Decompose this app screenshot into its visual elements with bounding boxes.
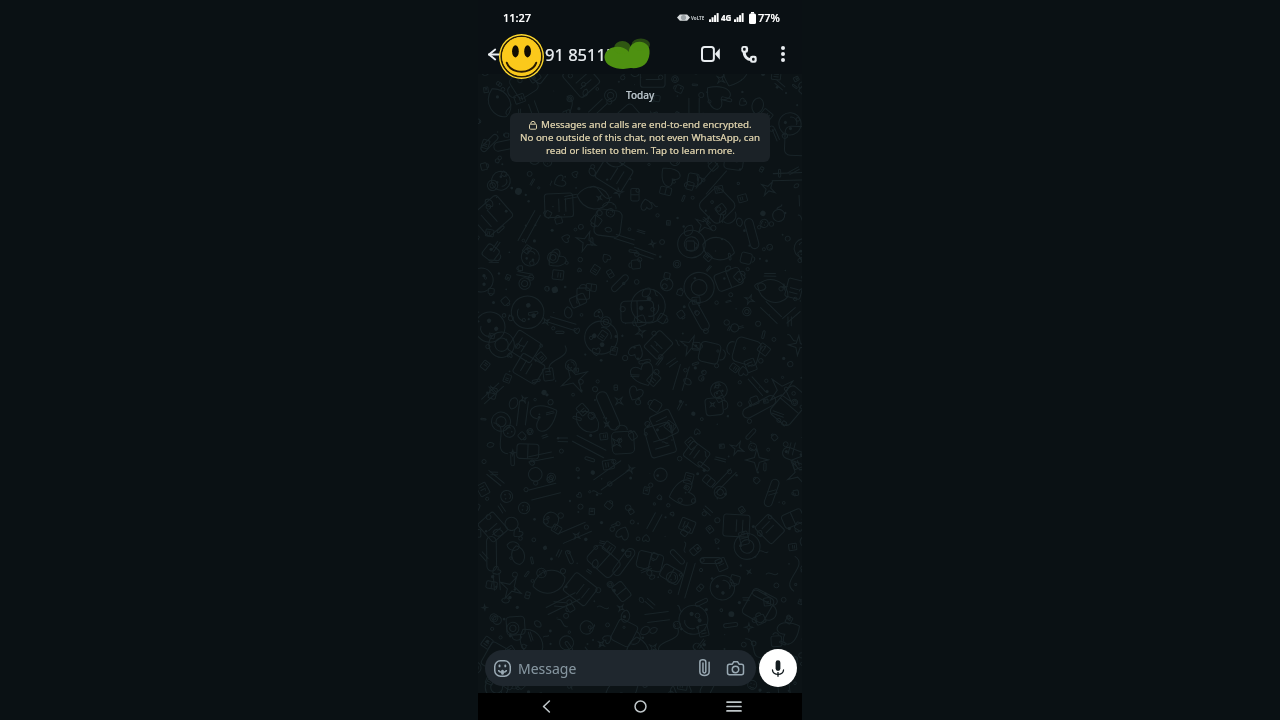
button[interactable]: Message <box>485 650 756 686</box>
button[interactable]: Recent apps <box>687 693 781 720</box>
staticText: 91 85115 <box>545 43 616 65</box>
button[interactable]: Record voice message <box>759 649 797 687</box>
button[interactable]: Back <box>483 42 507 66</box>
button[interactable]: Home <box>593 693 687 720</box>
button[interactable]: Back <box>499 693 593 720</box>
staticText: 77% <box>758 10 780 25</box>
button[interactable]: Camera <box>724 657 746 679</box>
staticText: No one outside of this chat, not even Wh… <box>520 131 761 144</box>
staticText: Message <box>518 659 577 678</box>
button[interactable]: More options <box>769 40 797 68</box>
button[interactable]: Messages and calls are end-to-end encryp… <box>510 113 770 162</box>
staticText: VoLTE <box>691 15 705 21</box>
staticText: 11:27 <box>503 10 532 25</box>
staticText: Messages and calls are end-to-end encryp… <box>541 118 752 131</box>
staticText: read or listen to them. Tap to learn mor… <box>546 144 735 157</box>
staticText: Today <box>626 88 655 102</box>
button[interactable]: Voice call <box>734 39 764 69</box>
staticText: 4G <box>721 12 732 23</box>
button[interactable]: Video call <box>695 39 725 69</box>
button[interactable]: Attach <box>693 657 715 679</box>
